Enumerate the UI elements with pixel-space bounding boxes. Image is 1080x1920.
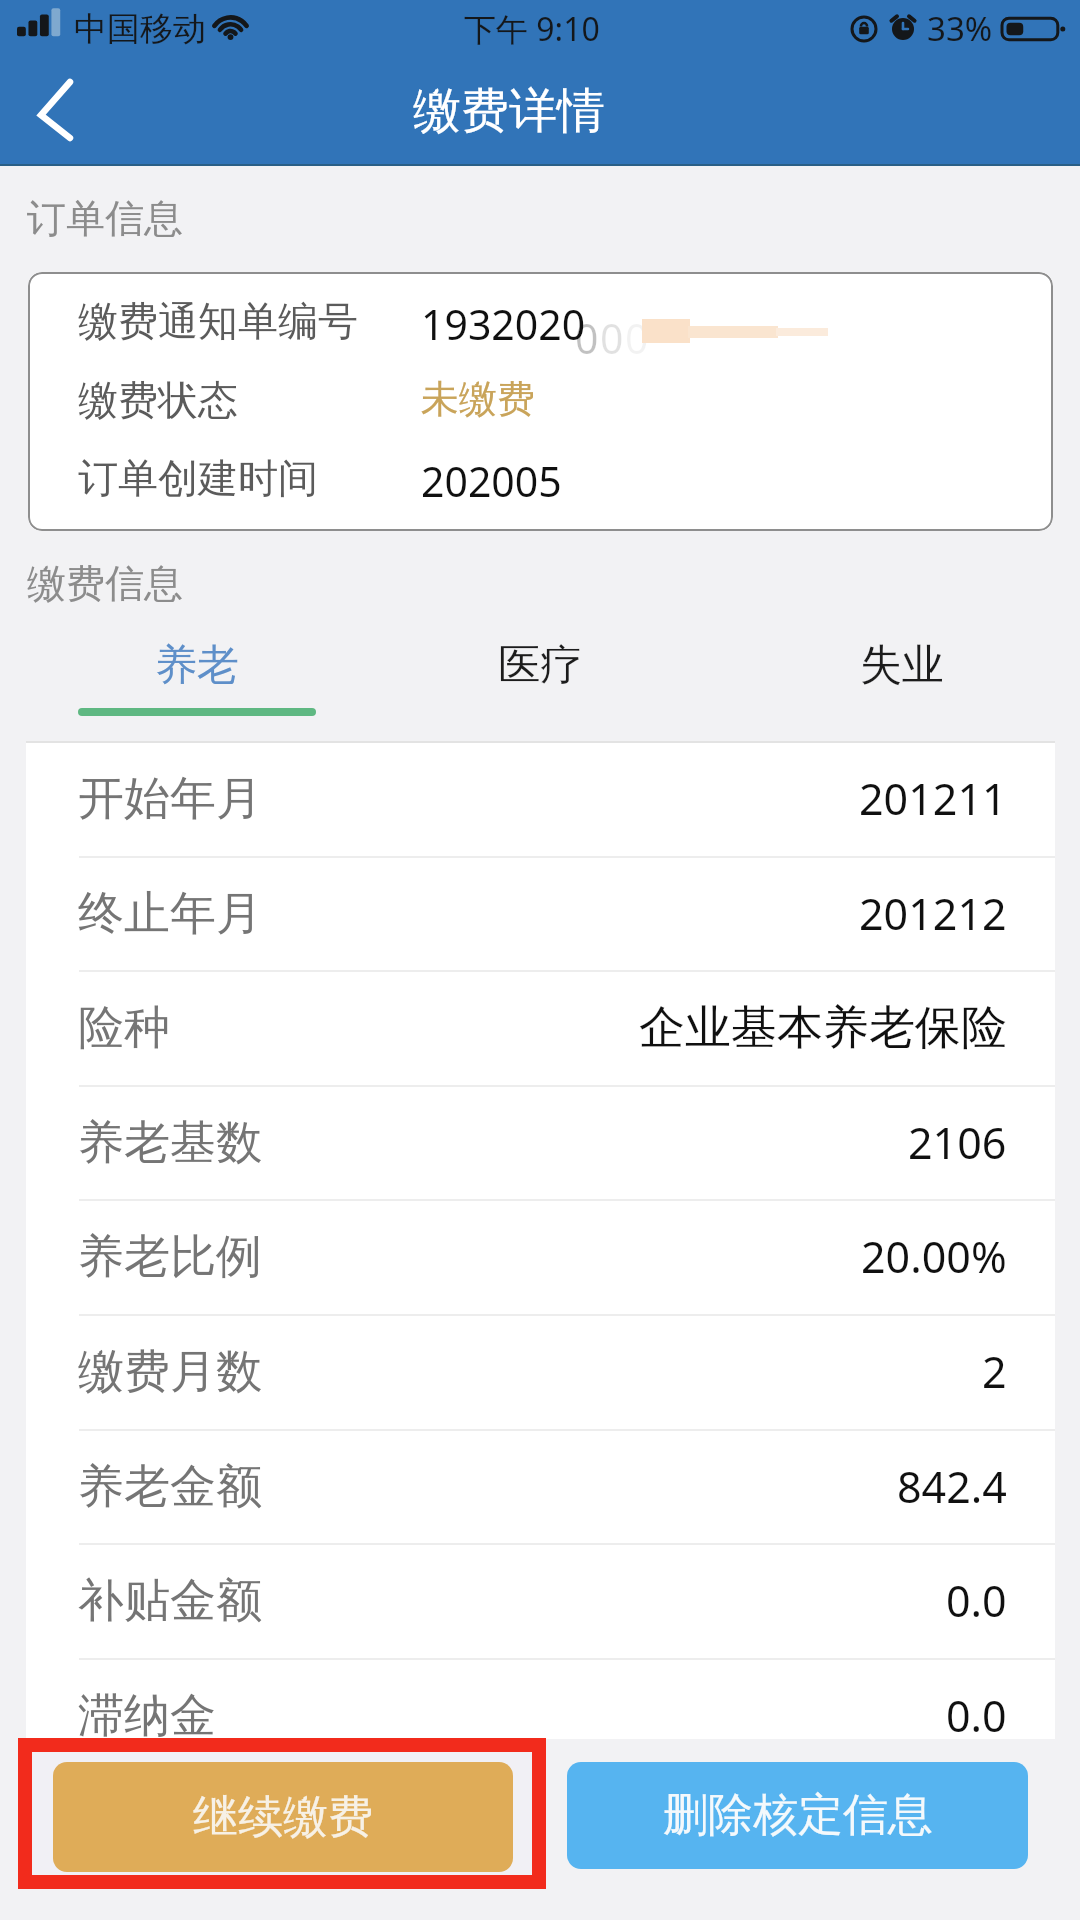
staticText: 失业: [860, 639, 944, 692]
staticText: 缴费通知单编号: [78, 296, 421, 346]
button[interactable]: Back: [0, 57, 112, 166]
staticText: 842.4: [897, 1457, 1007, 1516]
staticText: 下午 9:10: [464, 7, 600, 51]
staticText: 养老比例: [78, 1228, 262, 1286]
staticText: 1932020: [421, 296, 586, 352]
staticText: 养老金额: [78, 1458, 262, 1516]
staticText: 终止年月: [78, 885, 262, 943]
button[interactable]: 养老基数: [26, 1085, 1055, 1200]
button[interactable]: 养老: [97, 625, 297, 705]
staticText: 0: [625, 310, 649, 366]
staticText: 0.0: [946, 1571, 1007, 1630]
staticText: 滞纳金: [78, 1687, 216, 1745]
staticText: 2106: [908, 1113, 1007, 1172]
staticText: 缴费状态: [78, 375, 421, 425]
staticText: 33%: [927, 6, 993, 51]
staticText: 201212: [859, 884, 1007, 943]
staticText: 医疗: [498, 639, 582, 692]
staticText: 订单信息: [27, 194, 183, 243]
staticText: 缴费月数: [78, 1343, 262, 1401]
staticText: 0.0: [946, 1686, 1007, 1745]
button[interactable]: 缴费月数: [26, 1314, 1055, 1429]
staticText: 补贴金额: [78, 1572, 262, 1630]
button[interactable]: 终止年月: [26, 856, 1055, 971]
button[interactable]: 删除核定信息: [567, 1762, 1028, 1869]
staticText: 202005: [421, 453, 562, 509]
button[interactable]: 养老比例: [26, 1199, 1055, 1314]
staticText: 删除核定信息: [663, 1787, 933, 1844]
staticText: 0: [575, 310, 599, 366]
staticText: 企业基本养老保险: [639, 999, 1007, 1057]
staticText: 未缴费: [421, 375, 535, 423]
staticText: 缴费信息: [27, 559, 183, 608]
button[interactable]: 失业: [802, 625, 1002, 705]
button[interactable]: 继续缴费: [53, 1762, 513, 1872]
button[interactable]: 险种: [26, 970, 1055, 1085]
staticText: 2: [982, 1342, 1007, 1401]
staticText: 养老基数: [78, 1114, 262, 1172]
staticText: 险种: [78, 999, 170, 1057]
button[interactable]: 开始年月: [26, 741, 1055, 856]
button[interactable]: 滞纳金: [26, 1658, 1055, 1773]
staticText: 缴费详情: [413, 81, 605, 141]
staticText: 201211: [859, 769, 1007, 828]
button[interactable]: 养老金额: [26, 1429, 1055, 1544]
button[interactable]: 医疗: [440, 625, 640, 705]
staticText: 继续缴费: [193, 1789, 373, 1846]
staticText: 开始年月: [78, 770, 262, 828]
staticText: 订单创建时间: [78, 453, 421, 503]
staticText: 养老: [155, 639, 239, 692]
staticText: 0: [600, 310, 624, 366]
button[interactable]: 补贴金额: [26, 1543, 1055, 1658]
staticText: 20.00%: [861, 1227, 1007, 1286]
staticText: 中国移动: [74, 8, 206, 50]
